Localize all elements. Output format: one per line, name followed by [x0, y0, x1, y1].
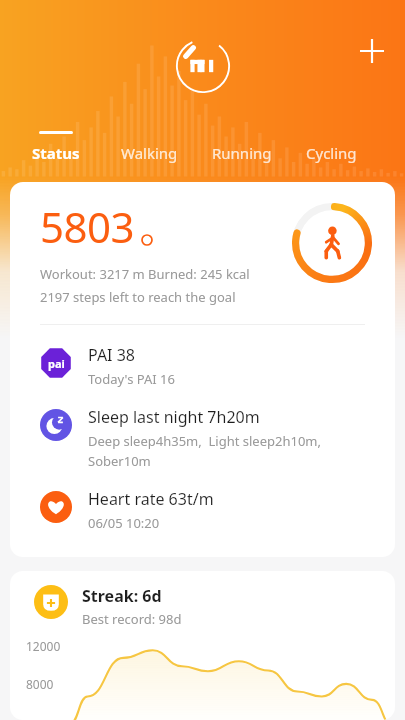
- button[interactable]: pai: [10, 335, 395, 397]
- staticText: Deep sleep4h35m, Light sleep2h10m,: [88, 432, 321, 450]
- staticText: Workout: 3217 m Burned: 245 kcal: [40, 265, 250, 283]
- button[interactable]: Add: [351, 30, 393, 72]
- button[interactable]: Running: [210, 131, 274, 163]
- staticText: 5803: [40, 198, 135, 255]
- staticText: 8000: [26, 676, 54, 692]
- staticText: Heart rate 63t/m: [88, 488, 214, 510]
- button[interactable]: Status: [30, 131, 82, 163]
- button[interactable]: Streak: 6d: [10, 571, 395, 720]
- staticText: Streak: 6d: [82, 585, 162, 607]
- staticText: 12000: [26, 638, 61, 654]
- staticText: Sober10m: [88, 452, 151, 470]
- button[interactable]: Heart rate 63t/m: [10, 479, 395, 541]
- button[interactable]: Cycling: [304, 131, 359, 163]
- button[interactable]: Walking: [119, 131, 180, 163]
- staticText: pai: [48, 356, 65, 371]
- staticText: Today's PAI 16: [88, 370, 175, 388]
- staticText: Status: [32, 143, 80, 163]
- staticText: Best record: 98d: [82, 610, 182, 628]
- button[interactable]: 5803: [10, 182, 395, 557]
- staticText: Cycling: [306, 143, 357, 163]
- staticText: 06/05 10:20: [88, 514, 160, 532]
- staticText: PAI 38: [88, 344, 135, 366]
- staticText: Sleep last night 7h20m: [88, 406, 260, 428]
- staticText: Walking: [121, 143, 178, 163]
- button[interactable]: Sleep last night 7h20m: [10, 397, 395, 479]
- staticText: 2197 steps left to reach the goal: [40, 288, 236, 306]
- button[interactable]: Mi Fit logo: [175, 38, 231, 94]
- staticText: Running: [212, 143, 272, 163]
- button[interactable]: Step goal progress: [291, 202, 373, 284]
